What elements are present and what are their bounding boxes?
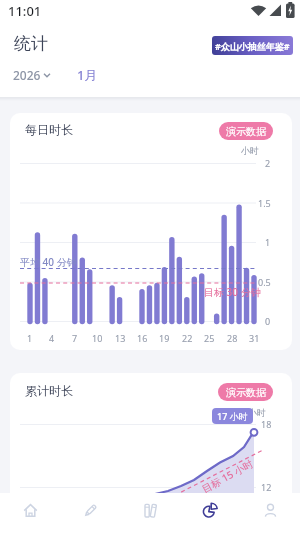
staticText: 平均 40 分钟 (20, 255, 77, 269)
staticText: 目标 15 小时 (199, 456, 256, 496)
staticText: 28 (227, 332, 238, 344)
staticText: 13 (115, 332, 126, 344)
staticText: 10 (92, 332, 103, 344)
button[interactable]: 演示数据 (219, 122, 273, 140)
staticText: 目标 30 分钟 (204, 285, 261, 299)
staticText: 16 (137, 332, 148, 344)
staticText: 22 (182, 332, 193, 344)
staticText: 累计时长 (25, 383, 73, 398)
button[interactable] (240, 493, 300, 533)
staticText: 每日时长 (25, 122, 73, 137)
staticText: 演示数据 (226, 386, 266, 399)
staticText: 11:01 (8, 2, 42, 20)
staticText: 小时 (241, 145, 259, 156)
staticText: 1 (265, 236, 271, 248)
staticText: 2026 (13, 67, 41, 83)
staticText: 统计 (14, 33, 48, 54)
button[interactable]: 1月 (67, 62, 107, 88)
staticText: 0 (265, 315, 271, 327)
button[interactable]: 演示数据 (218, 383, 273, 401)
button[interactable] (120, 493, 180, 533)
staticText: 25 (204, 332, 215, 344)
staticText: 18 (261, 418, 272, 430)
staticText: 演示数据 (226, 125, 266, 138)
button[interactable] (60, 493, 120, 533)
staticText: 17 小时 (217, 410, 248, 422)
staticText: 31 (249, 332, 260, 344)
staticText: 0.5 (258, 276, 271, 288)
staticText: 1 (27, 332, 33, 344)
staticText: 1月 (77, 66, 98, 84)
button[interactable]: #众山小抽丝年鉴# (212, 36, 293, 55)
staticText: 小时 (248, 407, 266, 418)
button[interactable] (0, 493, 60, 533)
staticText: #众山小抽丝年鉴# (215, 40, 290, 52)
staticText: 12 (261, 481, 272, 493)
staticText: 2 (265, 157, 271, 169)
button[interactable] (180, 493, 240, 533)
staticText: 7 (72, 332, 78, 344)
staticText: 4 (49, 332, 55, 344)
button[interactable]: 2026 (13, 64, 53, 86)
staticText: 19 (159, 332, 170, 344)
staticText: 1.5 (258, 197, 271, 209)
